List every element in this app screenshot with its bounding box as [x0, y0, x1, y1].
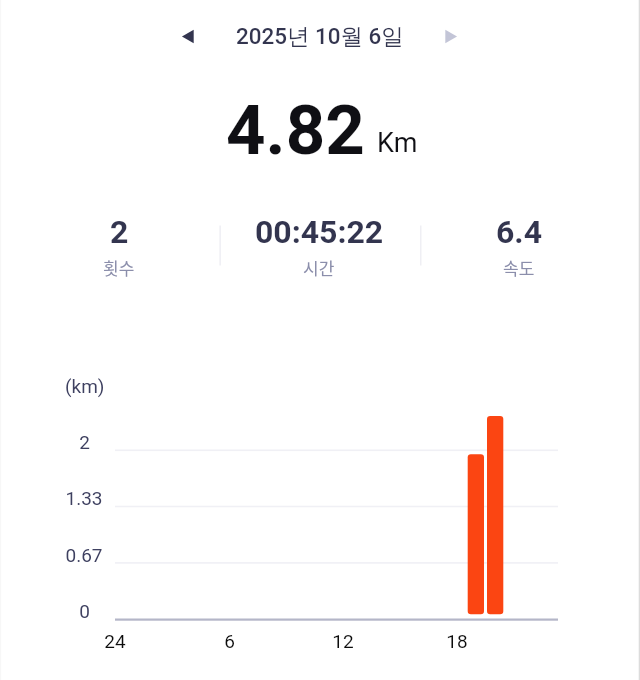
button[interactable]: Previous day	[165, 14, 209, 58]
staticText: 4.82	[226, 90, 365, 171]
staticText: 2025년 10월 6일	[236, 22, 404, 50]
staticText: 12	[332, 630, 354, 652]
staticText: 18	[446, 630, 468, 652]
staticText: 횟수	[103, 255, 135, 280]
staticText: 1.33	[65, 487, 103, 509]
staticText: Km	[377, 127, 418, 159]
staticText: 6	[224, 630, 235, 652]
button[interactable]: Next day	[429, 14, 473, 58]
button[interactable]: 2	[19, 203, 219, 289]
button[interactable]: 6.4	[419, 203, 619, 289]
staticText: 시간	[303, 255, 335, 280]
staticText: (km)	[65, 375, 105, 397]
staticText: 6.4	[496, 213, 543, 251]
button[interactable]: 00:45:22	[219, 203, 419, 289]
staticText: 0.67	[65, 544, 103, 566]
staticText: 2	[79, 431, 90, 453]
staticText: 24	[104, 630, 126, 652]
staticText: 속도	[503, 255, 535, 280]
staticText: 00:45:22	[255, 213, 384, 251]
staticText: 2	[110, 213, 129, 251]
staticText: 0	[79, 600, 90, 622]
